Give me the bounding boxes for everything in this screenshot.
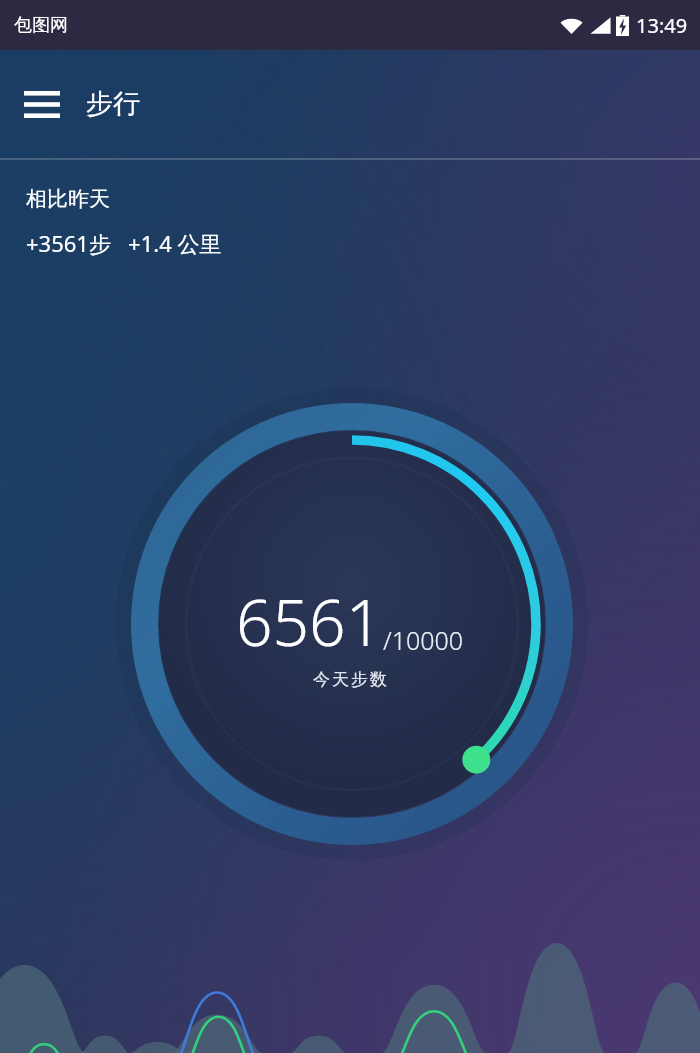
button[interactable]: Menu [12, 74, 72, 134]
staticText: +3561步 +1.4 公里 [26, 228, 222, 258]
staticText: 6561 [236, 578, 383, 665]
staticText: 13:49 [636, 12, 688, 39]
staticText: 相比昨天 [26, 186, 110, 212]
staticText: 步行 [86, 87, 140, 121]
staticText: 包图网 [14, 14, 68, 37]
staticText: 今天步数 [312, 669, 388, 690]
staticText: /10000 [383, 623, 464, 657]
